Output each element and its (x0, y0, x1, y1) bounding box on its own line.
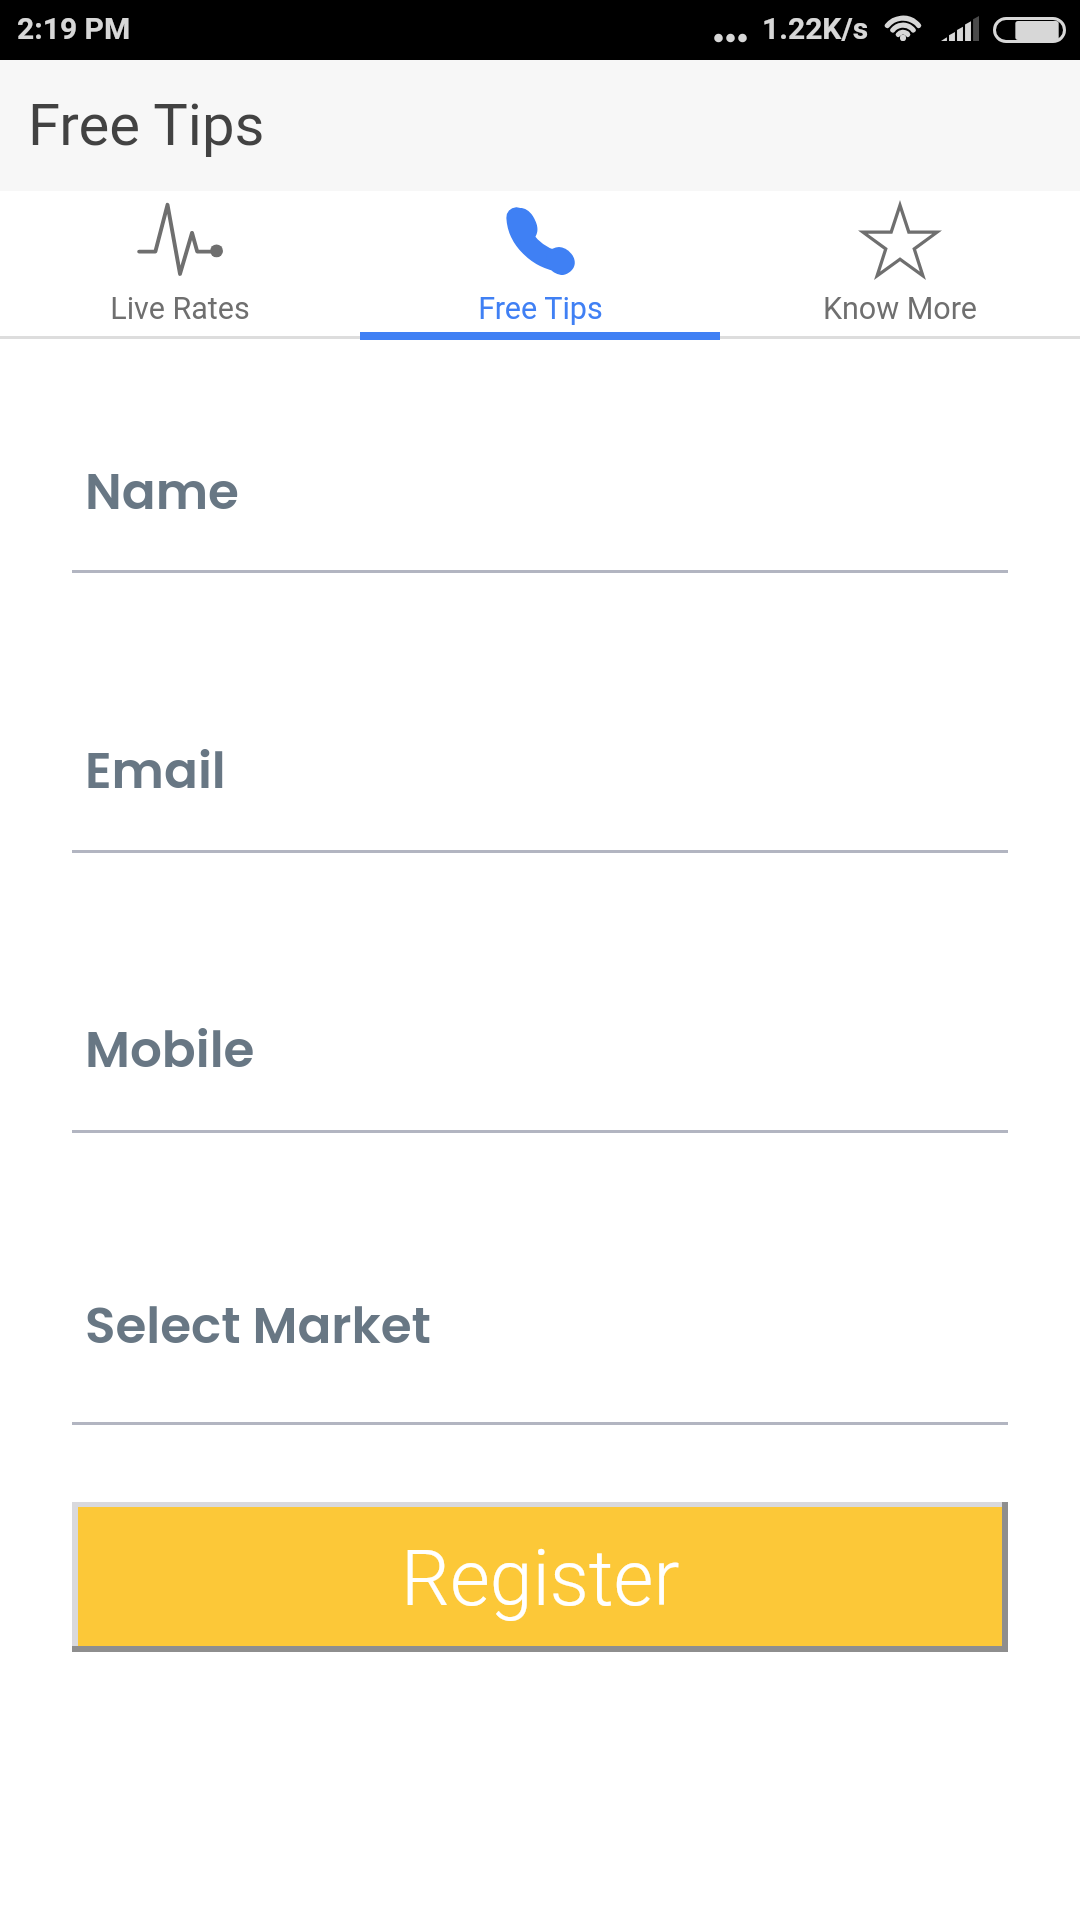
staticText: Free Tips (478, 291, 603, 327)
button[interactable]: Name (72, 449, 1008, 573)
staticText: Mobile (85, 1015, 255, 1085)
button[interactable]: Select Market (72, 1283, 1008, 1425)
other: Know More (857, 203, 943, 275)
staticText: Register (401, 1534, 680, 1624)
staticText: Live Rates (110, 291, 250, 327)
button[interactable]: Know More (720, 191, 1080, 339)
staticText: Know More (823, 291, 977, 327)
button[interactable]: Register (72, 1502, 1008, 1652)
other: Free Tips (497, 203, 583, 275)
button[interactable]: Free Tips (360, 191, 720, 339)
button[interactable]: Live Rates (0, 191, 360, 339)
staticText: 2:19 PM (17, 11, 131, 46)
staticText: 1.22K/s (762, 11, 869, 46)
staticText: Name (85, 457, 239, 527)
button[interactable]: Email (72, 728, 1008, 853)
other: Live Rates (137, 203, 223, 275)
staticText: Select Market (85, 1291, 431, 1361)
button[interactable]: Mobile (72, 1007, 1008, 1133)
staticText: Email (85, 736, 226, 806)
staticText: Free Tips (28, 91, 265, 159)
